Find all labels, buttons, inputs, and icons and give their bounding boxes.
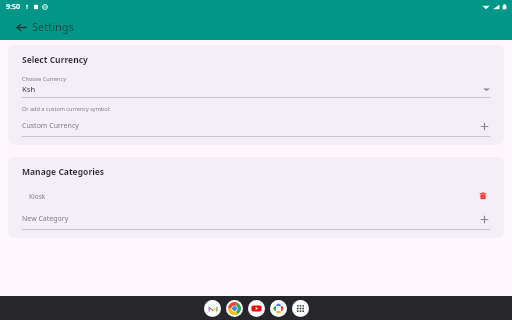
staticText: Select Currency	[22, 54, 88, 66]
button[interactable]: Chrome	[226, 300, 243, 317]
staticText: Or add a custom currency symbol:	[22, 105, 111, 112]
staticText: Manage Categories	[22, 166, 105, 178]
staticText: Custom Currency	[22, 121, 478, 131]
button[interactable]: Custom Currency	[22, 120, 490, 132]
button[interactable]: Add category	[478, 213, 490, 225]
staticText: Settings	[32, 19, 74, 34]
button[interactable]: Back	[10, 16, 32, 38]
staticText: New Category	[22, 214, 478, 224]
staticText: Choose Currency	[22, 75, 66, 82]
button[interactable]: New Category	[22, 213, 490, 225]
button[interactable]: Delete category	[476, 189, 490, 203]
button[interactable]: YouTube	[248, 300, 265, 317]
button[interactable]: Add custom currency	[478, 120, 490, 132]
staticText: Kiosk	[29, 192, 476, 201]
button[interactable]: All apps	[292, 300, 309, 317]
button[interactable]: Gmail	[204, 300, 221, 317]
button[interactable]: Photos	[270, 300, 287, 317]
staticText: Ksh	[22, 84, 483, 94]
button[interactable]: Kiosk	[22, 188, 490, 204]
staticText: 9:50	[6, 2, 20, 12]
button[interactable]: Ksh	[22, 84, 490, 94]
